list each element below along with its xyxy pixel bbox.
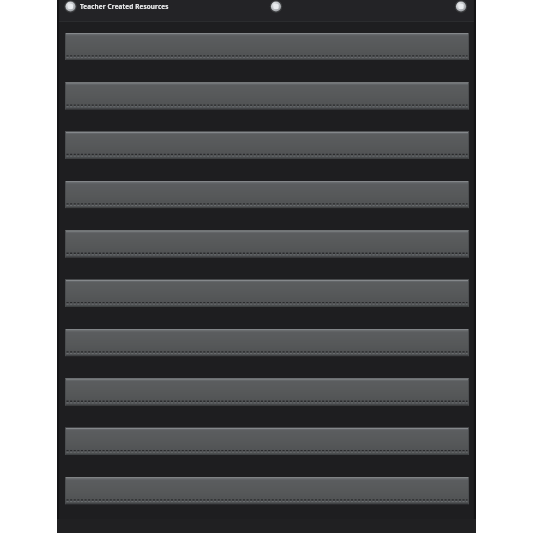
button[interactable]: Teacher Created Resources pocket chart (0, 0, 533, 533)
